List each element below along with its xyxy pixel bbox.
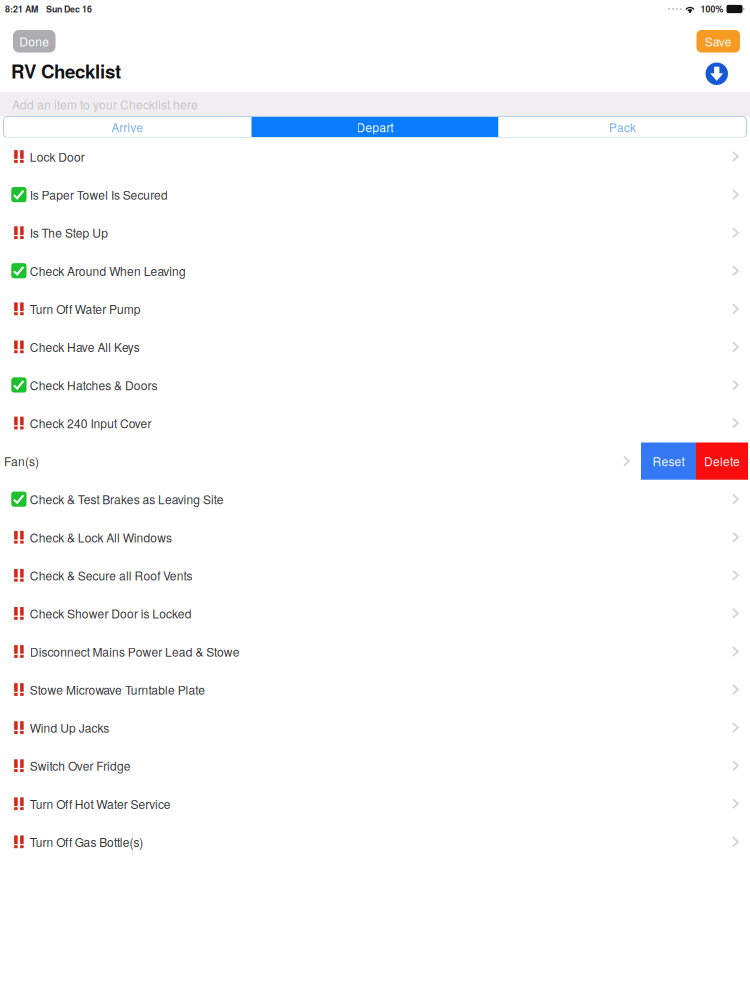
- staticText: Save: [705, 33, 732, 50]
- staticText: Lock Door: [30, 148, 85, 165]
- button[interactable]: Check Around When Leaving: [0, 252, 750, 290]
- staticText: Turn Off Water Pump: [30, 300, 141, 317]
- button[interactable]: Is The Step Up: [0, 214, 750, 252]
- button[interactable]: Save: [696, 30, 740, 52]
- staticText: Stowe Microwave Turntable Plate: [30, 681, 205, 698]
- button[interactable]: Turn Off Hot Water Service: [0, 785, 750, 823]
- staticText: Pack: [609, 118, 636, 136]
- staticText: Is Paper Towel Is Secured: [30, 186, 168, 203]
- staticText: Check & Lock All Windows: [30, 529, 172, 546]
- button[interactable]: Done: [13, 30, 55, 52]
- staticText: Sun Dec 16: [46, 3, 92, 15]
- button[interactable]: Disconnect Mains Power Lead & Stowe: [0, 632, 750, 670]
- staticText: Turn Off Hot Water Service: [30, 795, 171, 812]
- staticText: Check Shower Door is Locked: [30, 605, 192, 622]
- staticText: Depart: [356, 118, 393, 136]
- staticText: Wind Up Jacks: [30, 719, 109, 736]
- button[interactable]: Check Shower Door is Locked: [0, 594, 750, 632]
- button[interactable]: Lock Door: [0, 137, 750, 176]
- staticText: Add an item to your Checklist here: [12, 96, 198, 113]
- button[interactable]: Switch Over Fridge: [0, 747, 750, 785]
- button[interactable]: Check & Test Brakes as Leaving Site: [0, 480, 750, 518]
- button[interactable]: Turn Off Gas Bottle(s): [0, 823, 750, 861]
- staticText: Delete: [704, 452, 740, 470]
- button[interactable]: Arrive: [3, 116, 251, 137]
- staticText: Reset: [652, 452, 684, 470]
- staticText: Check Around When Leaving: [30, 262, 186, 279]
- button[interactable]: Wind Up Jacks: [0, 709, 750, 747]
- button[interactable]: Delete: [696, 442, 748, 480]
- staticText: 100%: [700, 3, 723, 15]
- staticText: Done: [19, 33, 49, 50]
- staticText: Switch Over Fridge: [30, 757, 131, 774]
- staticText: Disconnect Mains Power Lead & Stowe: [30, 643, 240, 660]
- staticText: 8:21 AM: [5, 3, 38, 15]
- staticText: Check Hatches & Doors: [30, 376, 157, 394]
- button[interactable]: Pack: [498, 116, 746, 137]
- staticText: Check & Test Brakes as Leaving Site: [30, 491, 224, 508]
- button[interactable]: Check & Lock All Windows: [0, 518, 750, 556]
- button[interactable]: Is Paper Towel Is Secured: [0, 176, 750, 214]
- staticText: e Fan(s): [0, 452, 39, 470]
- staticText: RV Checklist: [11, 57, 121, 84]
- staticText: Arrive: [111, 118, 143, 136]
- staticText: Check 240 Input Cover: [30, 414, 151, 432]
- staticText: Check & Secure all Roof Vents: [30, 567, 192, 584]
- button[interactable]: Check 240 Input Cover: [0, 404, 750, 442]
- button[interactable]: Reset: [641, 442, 696, 480]
- button[interactable]: Depart: [251, 116, 498, 137]
- button[interactable]: Download checklist: [705, 62, 728, 85]
- staticText: Check Have All Keys: [30, 338, 140, 355]
- button[interactable]: e Fan(s): [0, 442, 641, 480]
- staticText: Turn Off Gas Bottle(s): [30, 833, 143, 850]
- staticText: Is The Step Up: [30, 224, 108, 241]
- button[interactable]: Turn Off Water Pump: [0, 290, 750, 328]
- button[interactable]: Stowe Microwave Turntable Plate: [0, 670, 750, 709]
- button[interactable]: Check Have All Keys: [0, 328, 750, 366]
- button[interactable]: Check & Secure all Roof Vents: [0, 556, 750, 594]
- button[interactable]: Check Hatches & Doors: [0, 366, 750, 404]
